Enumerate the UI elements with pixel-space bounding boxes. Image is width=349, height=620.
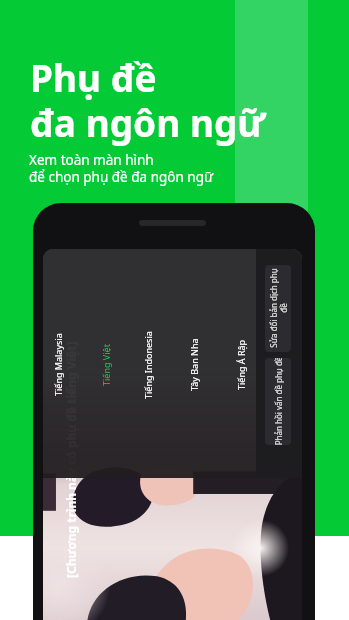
button[interactable]: Tiếng Á Rập	[219, 292, 263, 437]
staticText: để chọn phụ đề đa ngôn ngữ	[29, 168, 214, 186]
button[interactable]: Tiếng Malaysia	[43, 292, 80, 437]
staticText: [Chương trình này có phụ đề tiếng Việt]	[63, 341, 79, 578]
staticText: Sửa đổi bản dịch phụ đề	[267, 265, 288, 352]
staticText: Xem toàn màn hình	[29, 151, 154, 169]
staticText: Tây Ban Nha	[188, 338, 200, 391]
staticText: Tiếng Á Rập	[235, 339, 247, 390]
staticText: Phản hồi vấn đề phụ đề	[272, 358, 283, 445]
button[interactable]: Tây Ban Nha	[172, 292, 216, 437]
button[interactable]: Tiếng Indonesia	[126, 292, 170, 437]
button[interactable]: Phản hồi vấn đề phụ đề	[265, 358, 291, 445]
button[interactable]: Sửa đổi bản dịch phụ đề	[265, 265, 291, 352]
staticText: đa ngôn ngữ	[30, 97, 266, 147]
staticText: Tiếng Malaysia	[52, 333, 64, 396]
staticText: Phụ đề	[30, 52, 157, 102]
button[interactable]: Tiếng Việt	[84, 292, 128, 437]
staticText: Tiếng Indonesia	[142, 331, 154, 399]
staticText: Tiếng Việt	[100, 344, 112, 386]
